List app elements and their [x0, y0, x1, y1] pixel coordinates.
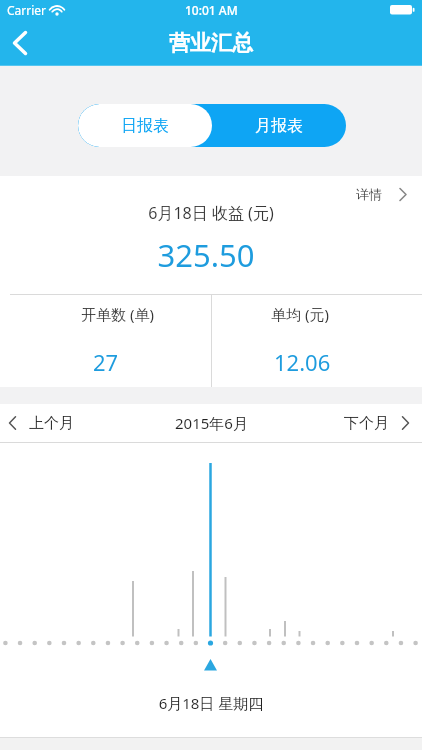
button[interactable]: 日报表	[78, 104, 212, 147]
staticText: 6月18日 收益 (元)	[0, 202, 422, 224]
staticText: 开单数 (单)	[81, 304, 154, 324]
staticText: 12.06	[274, 347, 331, 375]
staticText: 2015年6月	[175, 413, 248, 433]
button[interactable]	[0, 20, 40, 66]
staticText: 详情	[356, 186, 382, 202]
button[interactable]: 月报表	[212, 104, 346, 147]
staticText: 下个月	[344, 414, 389, 433]
staticText: 上个月	[29, 414, 74, 433]
staticText: 月报表	[255, 116, 303, 136]
button[interactable]: 下个月	[344, 404, 410, 442]
button[interactable]: 详情	[356, 183, 407, 205]
staticText: 营业汇总	[169, 30, 253, 56]
staticText: 27	[93, 347, 119, 375]
staticText: 日报表	[121, 116, 169, 136]
button[interactable]: 上个月	[8, 404, 74, 442]
staticText: Carrier	[7, 2, 47, 18]
staticText: 6月18日 星期四	[0, 693, 422, 713]
staticText: 325.50	[0, 234, 417, 276]
staticText: 单均 (元)	[271, 304, 329, 324]
staticText: 10:01 AM	[185, 2, 238, 18]
